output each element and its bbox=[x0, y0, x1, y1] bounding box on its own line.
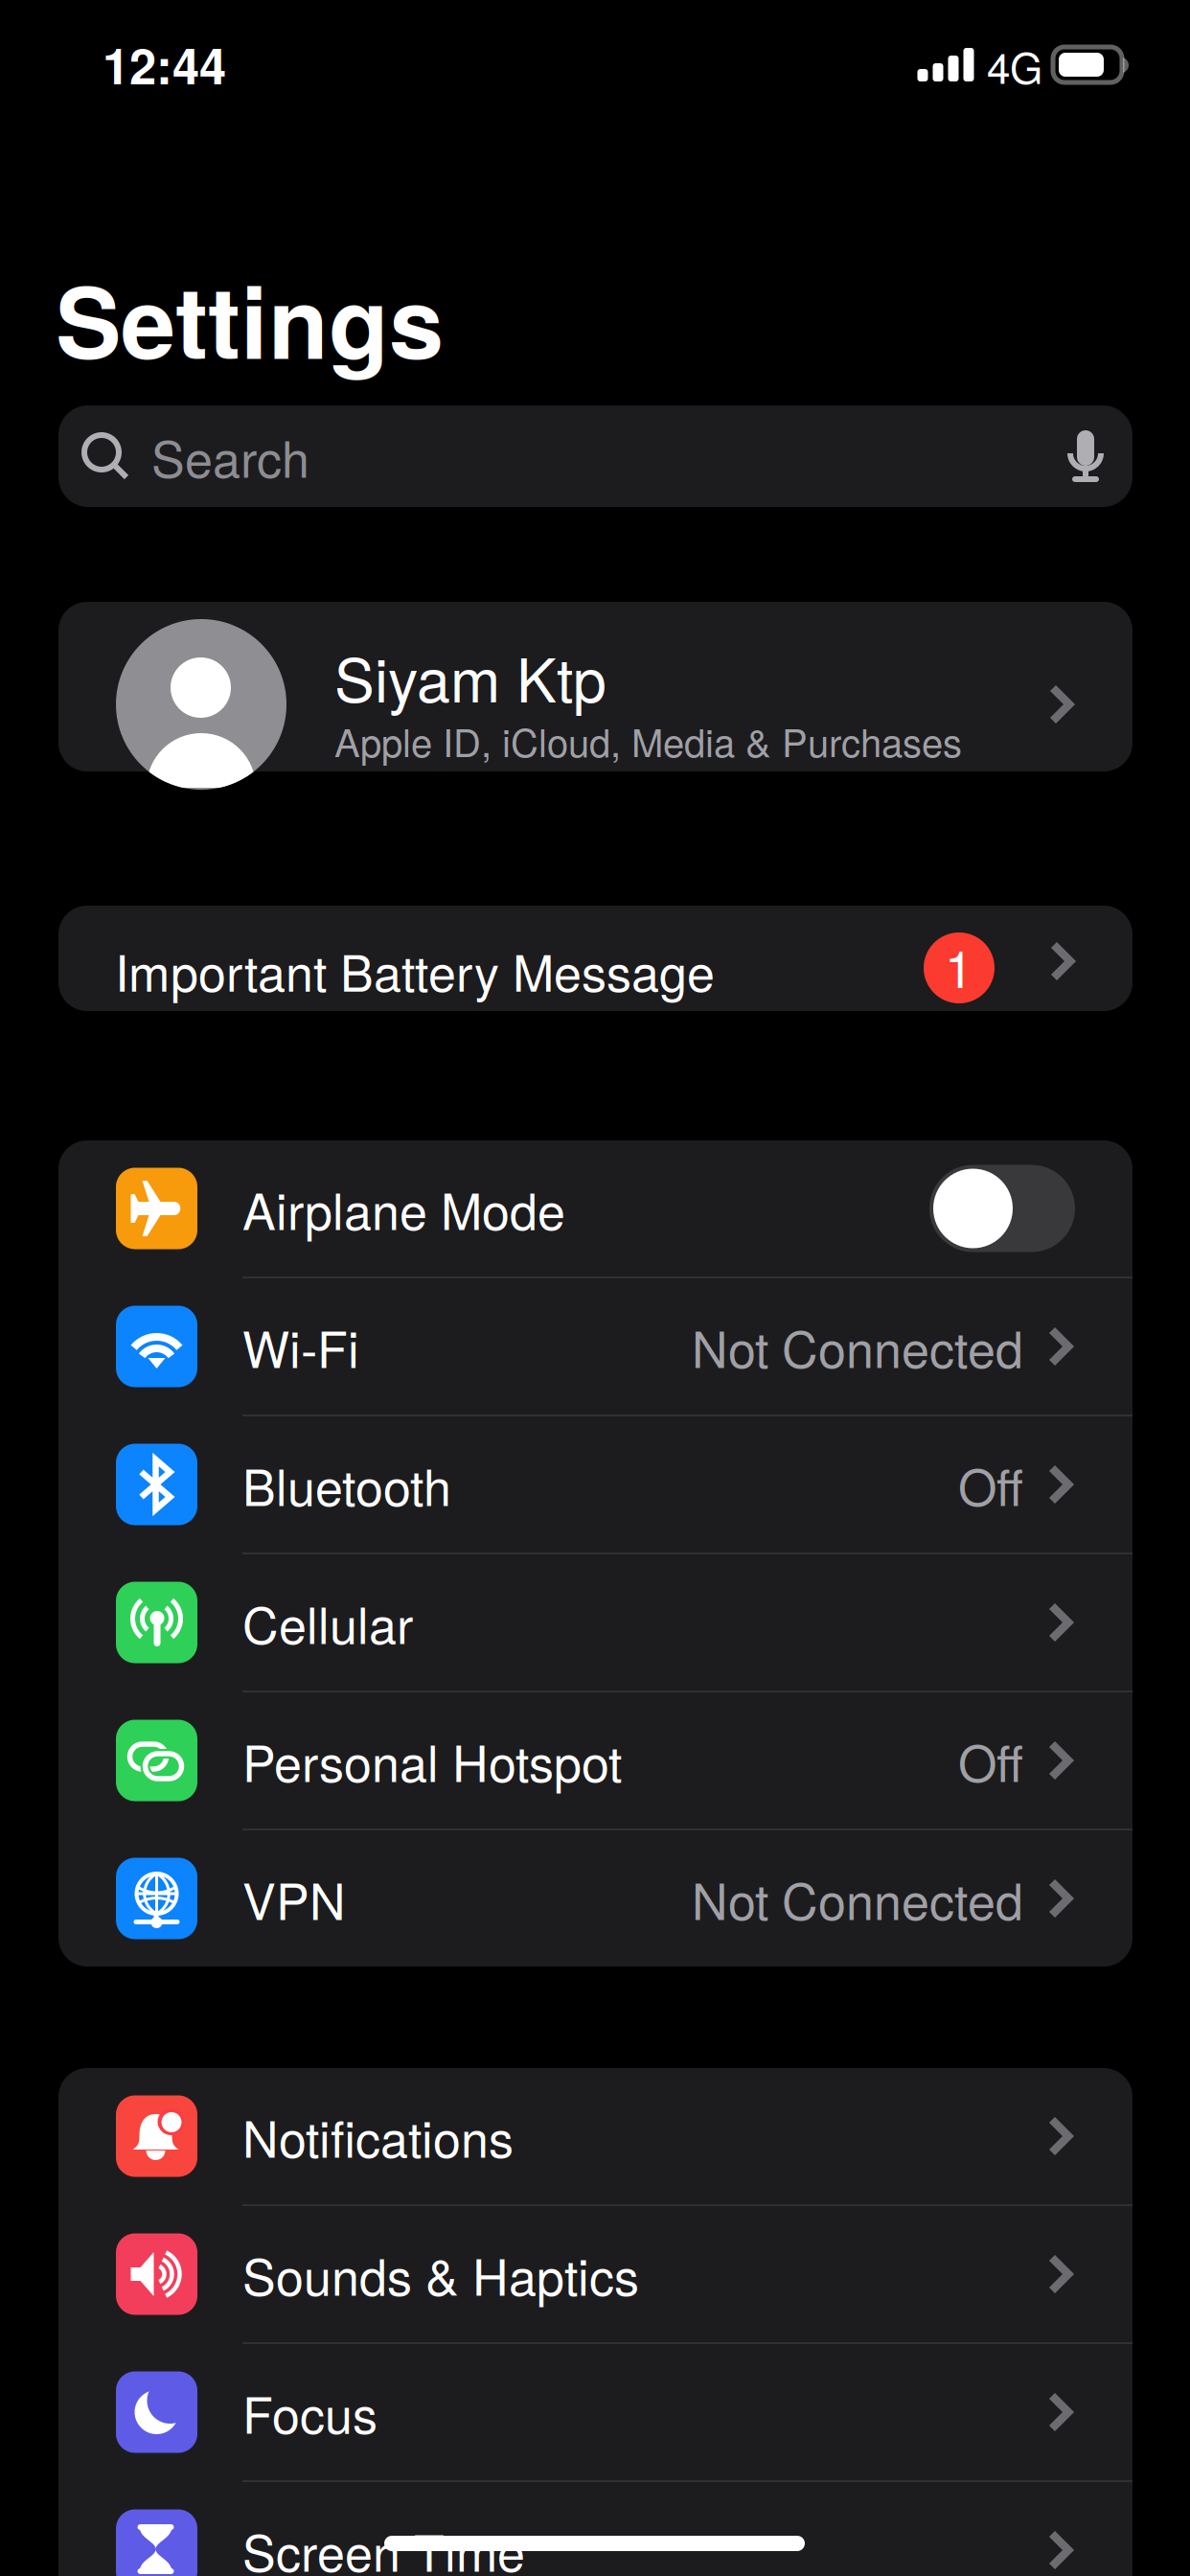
staticText: Personal Hotspot bbox=[242, 1725, 622, 1796]
staticText: Search bbox=[151, 421, 309, 492]
button[interactable]: Focus bbox=[58, 2344, 1133, 2480]
staticText: Notifications bbox=[242, 2100, 514, 2172]
button[interactable]: Bluetooth bbox=[58, 1416, 1133, 1552]
staticText: Not Connected bbox=[692, 1311, 1023, 1382]
staticText: Off bbox=[958, 1725, 1023, 1796]
staticText: Not Connected bbox=[692, 1863, 1023, 1934]
staticText: Wi-Fi bbox=[242, 1311, 359, 1382]
staticText: Sounds & Haptics bbox=[242, 2238, 639, 2310]
button[interactable]: Search bbox=[58, 405, 1133, 507]
staticText: Bluetooth bbox=[242, 1449, 451, 1520]
button[interactable]: Screen Time bbox=[58, 2482, 1133, 2576]
staticText: VPN bbox=[242, 1863, 346, 1934]
button[interactable]: Notifications bbox=[58, 2068, 1133, 2204]
button[interactable]: Personal Hotspot bbox=[58, 1692, 1133, 1828]
button[interactable]: VPN bbox=[58, 1830, 1133, 1966]
staticText: Off bbox=[958, 1449, 1023, 1520]
button[interactable]: Wi-Fi bbox=[58, 1278, 1133, 1414]
button[interactable]: Sounds & Haptics bbox=[58, 2206, 1133, 2342]
button[interactable]: Cellular bbox=[58, 1554, 1133, 1690]
staticText: Focus bbox=[242, 2376, 378, 2448]
button[interactable]: Airplane Mode bbox=[58, 1140, 1133, 1276]
staticText: Screen Time bbox=[242, 2514, 525, 2576]
button[interactable]: Siyam Ktp bbox=[58, 602, 1133, 771]
staticText: 1 bbox=[945, 929, 973, 1003]
staticText: Important Battery Message bbox=[115, 934, 715, 1006]
staticText: Siyam Ktp bbox=[334, 633, 606, 719]
staticText: 4G bbox=[987, 35, 1042, 96]
staticText: 12:44 bbox=[103, 30, 226, 99]
button[interactable]: Important Battery Message bbox=[58, 906, 1133, 1011]
staticText: Airplane Mode bbox=[242, 1173, 565, 1244]
staticText: Apple ID, iCloud, Media & Purchases bbox=[334, 713, 962, 768]
staticText: Cellular bbox=[242, 1587, 413, 1658]
staticText: Settings bbox=[56, 248, 444, 389]
